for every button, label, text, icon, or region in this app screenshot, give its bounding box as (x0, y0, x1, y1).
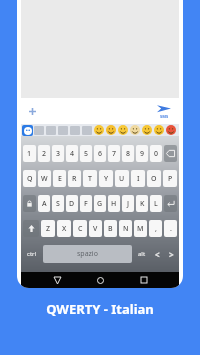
staticText: H (111, 199, 117, 209)
button[interactable]: X (57, 220, 71, 237)
button[interactable]: Emoji (154, 125, 164, 135)
button[interactable]: 7 (108, 145, 120, 162)
button[interactable]: Left (151, 245, 163, 263)
staticText: R (72, 174, 77, 184)
button[interactable]: 8 (122, 145, 134, 162)
staticText: 0 (154, 149, 159, 159)
staticText: X (62, 224, 67, 234)
staticText: 8 (126, 149, 131, 159)
button[interactable]: Shift (23, 220, 39, 237)
button[interactable]: E (53, 170, 66, 187)
button[interactable]: Q (23, 170, 36, 187)
button[interactable]: Right (165, 245, 177, 263)
button[interactable]: S (52, 195, 64, 212)
button[interactable]: , (149, 220, 162, 237)
button[interactable]: Recents (136, 272, 152, 288)
button[interactable]: N (119, 220, 132, 237)
staticText: 9 (140, 149, 145, 159)
button[interactable]: Emoji keyboard (22, 125, 33, 136)
staticText: K (140, 199, 145, 209)
button[interactable]: I (131, 170, 145, 187)
staticText: O (151, 174, 157, 184)
button[interactable]: Caps lock (23, 195, 36, 212)
staticText: F (84, 199, 88, 209)
staticText: P (168, 174, 173, 184)
button[interactable]: F (80, 195, 92, 212)
button[interactable]: P (163, 170, 177, 187)
staticText: B (108, 224, 113, 234)
button[interactable]: Emoji (130, 125, 140, 135)
button[interactable]: 9 (136, 145, 148, 162)
button[interactable]: 4 (66, 145, 78, 162)
staticText: < (155, 249, 160, 260)
staticText: 1 (27, 149, 32, 159)
staticText: V (93, 224, 98, 234)
staticText: J (127, 199, 130, 209)
button[interactable]: Z (41, 220, 55, 237)
button[interactable]: L (150, 195, 162, 212)
button[interactable]: Y (99, 170, 113, 187)
staticText: I (137, 174, 140, 184)
button[interactable]: Send SMS (149, 98, 179, 124)
button[interactable]: Backspace (164, 145, 177, 162)
button[interactable]: 5 (80, 145, 92, 162)
staticText: L (154, 199, 158, 209)
button[interactable]: Emoji (118, 125, 128, 135)
button[interactable]: D (66, 195, 78, 212)
button[interactable]: H (108, 195, 120, 212)
button[interactable]: spazio (43, 245, 132, 263)
staticText: 6 (98, 149, 103, 159)
button[interactable]: 1 (23, 145, 36, 162)
staticText: S (56, 199, 60, 209)
staticText: , (155, 224, 157, 234)
staticText: N (123, 224, 129, 234)
button[interactable]: M (134, 220, 147, 237)
button[interactable]: A (38, 195, 50, 212)
button[interactable]: 2 (38, 145, 50, 162)
button[interactable]: 3 (52, 145, 64, 162)
staticText: SMS (160, 114, 169, 119)
button[interactable]: U (115, 170, 129, 187)
staticText: W (41, 174, 48, 184)
staticText: > (169, 249, 174, 260)
staticText: Y (104, 174, 109, 184)
staticText: 2 (42, 149, 47, 159)
button[interactable]: Home (92, 272, 108, 288)
button[interactable]: R (68, 170, 81, 187)
button[interactable]: Emoji (142, 125, 152, 135)
staticText: E (58, 174, 62, 184)
button[interactable]: ctrl (23, 245, 41, 263)
button[interactable]: . (164, 220, 177, 237)
button[interactable]: 0 (150, 145, 162, 162)
button[interactable]: 6 (94, 145, 106, 162)
button[interactable]: V (89, 220, 102, 237)
button[interactable]: J (122, 195, 134, 212)
button[interactable]: Emoji (106, 125, 116, 135)
staticText: QWERTY - Italian (46, 300, 154, 318)
button[interactable]: Attach (21, 98, 43, 124)
staticText: alt (138, 250, 146, 258)
staticText: ctrl (27, 250, 37, 258)
button[interactable]: W (38, 170, 51, 187)
button[interactable]: alt (134, 245, 149, 263)
button[interactable]: G (94, 195, 106, 212)
staticText: . (170, 224, 172, 234)
staticText: T (88, 174, 92, 184)
staticText: G (97, 199, 103, 209)
button[interactable]: C (73, 220, 87, 237)
button[interactable]: T (83, 170, 97, 187)
staticText: spazio (77, 249, 98, 259)
button[interactable]: K (136, 195, 148, 212)
button[interactable]: B (104, 220, 117, 237)
button[interactable]: O (147, 170, 161, 187)
button[interactable]: Emoji (94, 125, 104, 135)
button[interactable]: Emoji (166, 125, 176, 135)
staticText: C (78, 224, 83, 234)
button[interactable]: Back (49, 272, 65, 288)
button[interactable]: Enter (164, 195, 177, 212)
